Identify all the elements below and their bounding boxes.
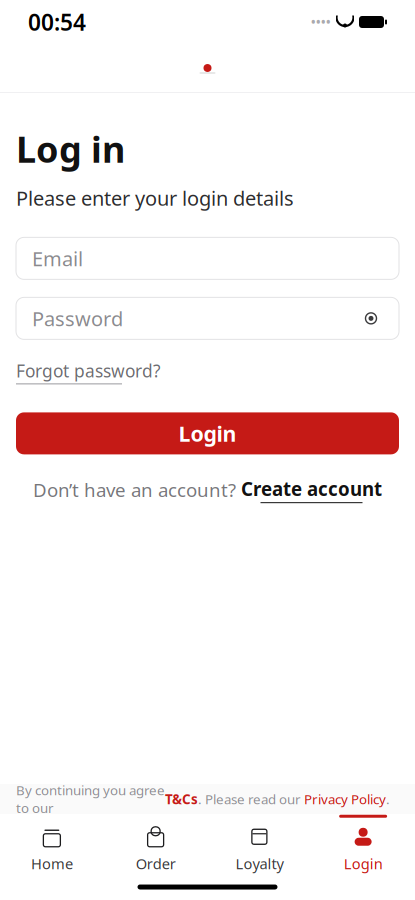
staticText: Please enter your login details [16, 185, 294, 211]
button[interactable]: Home [0, 814, 104, 874]
button[interactable]: Loyalty [207, 814, 311, 874]
button[interactable]: Create account [241, 476, 382, 503]
button[interactable]: Forgot password? [16, 355, 161, 388]
staticText: . [386, 790, 390, 808]
staticText: . Please read our [198, 790, 304, 808]
button[interactable]: Show password [359, 306, 383, 330]
staticText: Privacy Policy [304, 790, 386, 808]
button[interactable]: Login [16, 412, 399, 454]
button[interactable]: Order [104, 814, 208, 874]
staticText: Create account [241, 476, 382, 501]
staticText: •••• [311, 14, 331, 30]
staticText: Log in [16, 125, 125, 173]
button[interactable]: Login [311, 814, 415, 874]
staticText: Forgot password? [16, 359, 161, 382]
staticText: Don’t have an account? [33, 477, 236, 502]
staticText: Order [136, 854, 176, 873]
button[interactable]: Privacy Policy [304, 790, 386, 808]
staticText: Email [32, 245, 83, 272]
button[interactable]: T&Cs [165, 790, 198, 808]
staticText: 00:54 [28, 7, 86, 37]
staticText: Home [31, 854, 73, 873]
staticText: By continuing you agree to our [16, 781, 165, 817]
staticText: Loyalty [235, 854, 283, 873]
staticText: Login [344, 854, 383, 873]
staticText: Password [32, 305, 123, 332]
staticText: Login [178, 419, 236, 447]
staticText: T&Cs [165, 790, 198, 808]
